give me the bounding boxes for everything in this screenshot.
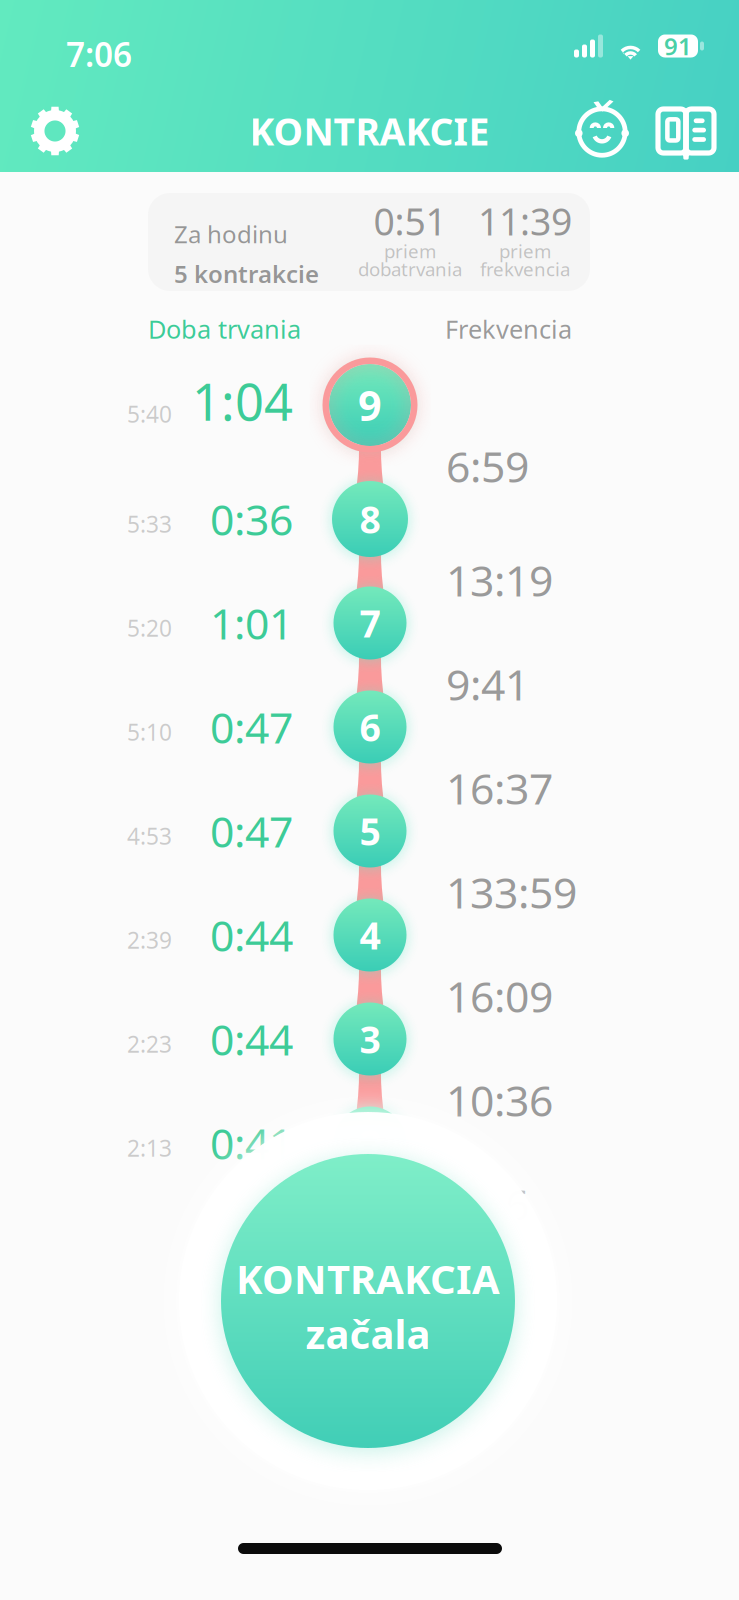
staticText: 0:51 bbox=[373, 196, 446, 246]
staticText: 13:19 bbox=[446, 552, 553, 608]
staticText: 1:04 bbox=[192, 367, 293, 435]
button[interactable]: Settings bbox=[12, 92, 98, 170]
staticText: 9:16 bbox=[446, 1176, 529, 1232]
staticText: frekvencia bbox=[480, 257, 570, 281]
button[interactable]: Baby profile bbox=[570, 92, 634, 170]
staticText: KONTRAKCIA bbox=[236, 1252, 500, 1305]
button[interactable]: KONTRAKCIA bbox=[158, 1091, 578, 1511]
staticText: 0:41 bbox=[210, 1115, 293, 1171]
staticText: priem bbox=[499, 239, 551, 263]
staticText: 8 bbox=[359, 494, 380, 544]
staticText: KONTRAKCIE bbox=[249, 106, 489, 156]
staticText: 5:33 bbox=[127, 509, 172, 539]
staticText: 6:59 bbox=[446, 438, 529, 494]
staticText: dobatrvania bbox=[358, 257, 462, 281]
staticText: 9 bbox=[358, 378, 382, 432]
staticText: 16:09 bbox=[446, 968, 553, 1024]
staticText: 2:13 bbox=[127, 1133, 172, 1163]
staticText: 16:37 bbox=[446, 760, 553, 816]
staticText: 91 bbox=[664, 30, 692, 62]
staticText: 0:44 bbox=[210, 907, 293, 963]
staticText: 133:59 bbox=[446, 864, 577, 920]
staticText: 1:01 bbox=[210, 595, 293, 651]
staticText: 7:06 bbox=[66, 32, 132, 76]
staticText: 5 bbox=[359, 806, 380, 856]
button[interactable]: Guide bbox=[654, 92, 718, 170]
staticText: 4:53 bbox=[127, 821, 172, 851]
staticText: Frekvencia bbox=[445, 312, 572, 346]
staticText: priem bbox=[384, 239, 436, 263]
staticText: 2:39 bbox=[127, 925, 172, 955]
staticText: Doba trvania bbox=[148, 312, 301, 346]
staticText: 6 bbox=[359, 702, 380, 752]
staticText: 0:36 bbox=[210, 491, 293, 547]
staticText: 4 bbox=[359, 910, 380, 960]
staticText: 2:23 bbox=[127, 1029, 172, 1059]
staticText: 0:47 bbox=[210, 699, 293, 755]
staticText: 3 bbox=[359, 1014, 380, 1064]
staticText: 7 bbox=[359, 598, 380, 648]
staticText: 5:40 bbox=[127, 399, 172, 429]
staticText: 5:10 bbox=[127, 717, 172, 747]
staticText: 5:20 bbox=[127, 613, 172, 643]
staticText: Za hodinu bbox=[174, 218, 288, 250]
staticText: 11:39 bbox=[478, 196, 572, 246]
staticText: 9:41 bbox=[446, 656, 529, 712]
staticText: začala bbox=[305, 1307, 430, 1360]
staticText: 10:36 bbox=[446, 1072, 553, 1128]
staticText: 5 kontrakcie bbox=[174, 258, 319, 290]
staticText: 2 bbox=[359, 1118, 380, 1168]
staticText: 0:47 bbox=[210, 803, 293, 859]
staticText: 0:44 bbox=[210, 1011, 293, 1067]
